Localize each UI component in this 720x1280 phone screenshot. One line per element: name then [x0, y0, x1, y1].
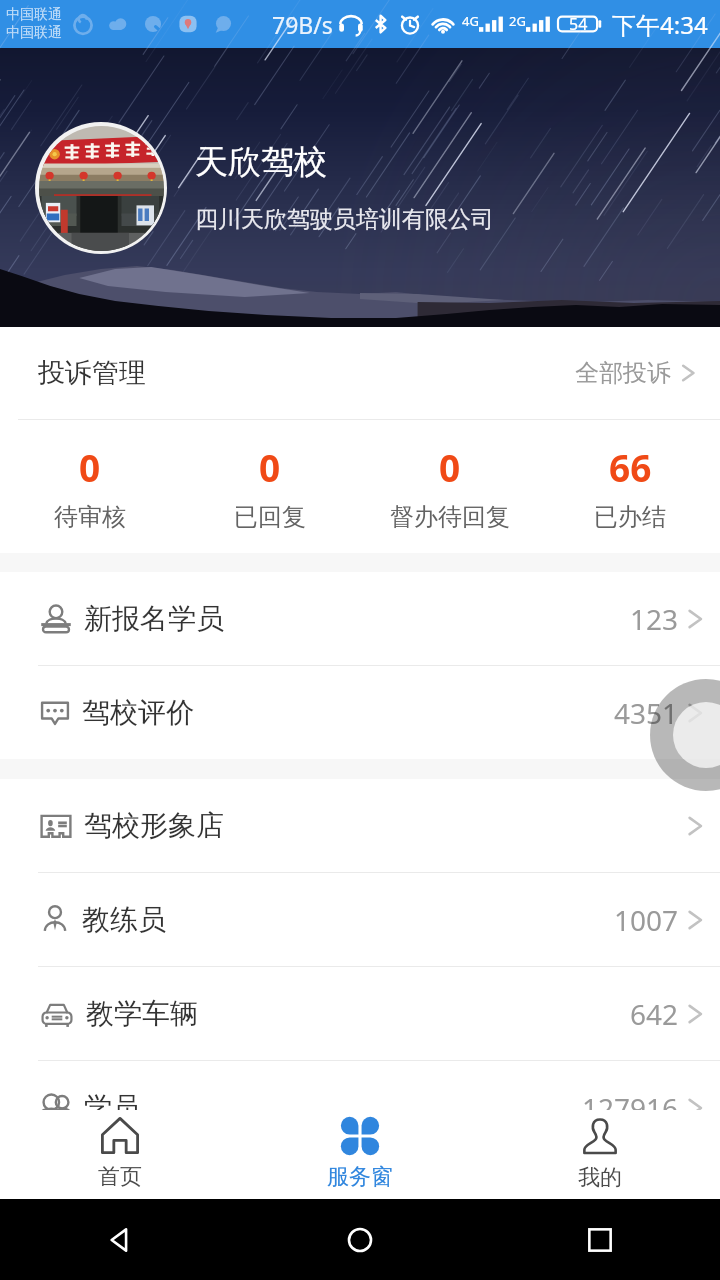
button[interactable]: School avatar — [35, 122, 167, 254]
button[interactable]: 我的 — [480, 1106, 720, 1199]
staticText: 教练员 — [82, 902, 166, 937]
button[interactable]: 0 — [360, 420, 540, 553]
button[interactable]: Recent apps — [480, 1199, 720, 1280]
staticText: 127916 — [582, 1089, 679, 1127]
button[interactable]: 教学车辆 — [0, 967, 720, 1060]
staticText: 下午4:34 — [612, 8, 708, 41]
button[interactable]: 0 — [0, 420, 180, 553]
staticText: 1007 — [614, 901, 679, 939]
button[interactable]: 投诉管理 — [0, 327, 720, 419]
staticText: 66 — [609, 442, 652, 492]
staticText: 已回复 — [234, 502, 306, 532]
button[interactable]: 首页 — [0, 1106, 240, 1199]
staticText: 全部投诉 — [575, 358, 671, 388]
staticText: 我的 — [578, 1164, 622, 1192]
staticText: 123 — [630, 600, 679, 638]
button[interactable]: 66 — [540, 420, 720, 553]
staticText: 投诉管理 — [38, 356, 146, 390]
button[interactable]: 驾校形象店 — [0, 779, 720, 872]
staticText: 79B/s — [272, 9, 333, 40]
staticText: 中国联通 — [6, 6, 62, 24]
button[interactable]: 新报名学员 — [0, 572, 720, 665]
staticText: 0 — [259, 442, 281, 492]
staticText: 督办待回复 — [390, 502, 510, 532]
staticText: 642 — [630, 995, 679, 1033]
staticText: 0 — [79, 442, 101, 492]
staticText: 新报名学员 — [84, 601, 224, 636]
staticText: 天欣驾校 — [195, 141, 327, 183]
button[interactable]: Home — [240, 1199, 480, 1280]
staticText: 四川天欣驾驶员培训有限公司 — [195, 205, 494, 234]
button[interactable]: 0 — [180, 420, 360, 553]
staticText: 2G — [509, 12, 526, 30]
staticText: 学员 — [84, 1090, 140, 1125]
staticText: 教学车辆 — [86, 996, 198, 1031]
staticText: 0 — [439, 442, 461, 492]
staticText: 中国联通 — [6, 24, 62, 42]
button[interactable]: 服务窗 — [240, 1106, 480, 1199]
staticText: 待审核 — [54, 502, 126, 532]
staticText: 4351 — [614, 694, 679, 732]
staticText: 服务窗 — [327, 1163, 393, 1191]
button[interactable]: 驾校评价 — [0, 666, 720, 759]
staticText: 4G — [462, 12, 479, 30]
staticText: 首页 — [98, 1163, 142, 1191]
staticText: 54 — [569, 13, 588, 35]
staticText: 驾校评价 — [82, 695, 194, 730]
button[interactable]: 学员 — [0, 1061, 720, 1154]
button[interactable]: Back — [0, 1199, 240, 1280]
button[interactable]: 教练员 — [0, 873, 720, 966]
staticText: 驾校形象店 — [84, 808, 224, 843]
staticText: 已办结 — [594, 502, 666, 532]
